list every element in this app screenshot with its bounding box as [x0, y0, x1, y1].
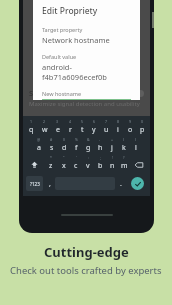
staticText: ;: [100, 155, 101, 160]
staticText: c: [74, 161, 78, 171]
staticText: :: [88, 155, 89, 160]
button[interactable]: ": [57, 155, 70, 174]
staticText: 9: [129, 119, 132, 124]
staticText: u: [104, 125, 109, 135]
staticText: s: [50, 143, 54, 153]
staticText: (: [123, 137, 125, 142]
staticText: 1: [30, 119, 33, 124]
button[interactable]: .: [115, 174, 126, 193]
button[interactable]: :: [82, 155, 94, 174]
staticText: 8: [117, 119, 120, 124]
staticText: k: [122, 143, 126, 153]
staticText: $: [63, 137, 66, 142]
staticText: y: [92, 125, 96, 135]
button[interactable]: 4: [64, 119, 76, 137]
button[interactable]: ): [130, 137, 142, 155]
staticText: l: [135, 143, 137, 153]
button[interactable]: 0: [136, 119, 148, 137]
staticText: i: [117, 125, 119, 135]
staticText: .: [120, 179, 122, 189]
staticText: z: [49, 161, 53, 171]
staticText: &: [87, 137, 90, 142]
staticText: Edit Propriety: [42, 5, 98, 17]
staticText: h: [98, 143, 103, 153]
button[interactable]: Shift: [25, 155, 44, 174]
staticText: t: [81, 125, 84, 135]
button[interactable]: @: [32, 137, 45, 155]
staticText: 0: [141, 119, 144, 124]
staticText: 7: [105, 119, 108, 124]
staticText: %: [75, 137, 78, 142]
button[interactable]: ?: [118, 155, 130, 174]
staticText: !: [112, 155, 113, 160]
staticText: v: [86, 161, 90, 171]
button[interactable]: 8: [112, 119, 124, 137]
staticText: ': [76, 155, 77, 160]
button[interactable]: ,: [44, 174, 55, 193]
button[interactable]: ;: [94, 155, 106, 174]
staticText: p: [140, 125, 145, 135]
button[interactable]: !: [106, 155, 118, 174]
staticText: New hostname: [42, 90, 82, 97]
button[interactable]: Enter: [131, 177, 144, 190]
staticText: +: [111, 137, 114, 142]
button[interactable]: 1: [25, 119, 38, 137]
button[interactable]: ?123: [26, 176, 43, 191]
staticText: ": [63, 155, 65, 160]
button[interactable]: -: [94, 137, 106, 155]
staticText: android-f4b71a6096ecef0b: [42, 62, 131, 82]
staticText: m: [121, 161, 128, 171]
staticText: Cutting-edge: [44, 243, 129, 261]
staticText: w: [42, 125, 48, 135]
button[interactable]: 5: [76, 119, 88, 137]
staticText: f: [75, 143, 78, 153]
staticText: 4: [69, 119, 72, 124]
staticText: b: [98, 161, 103, 171]
button[interactable]: +: [106, 137, 118, 155]
staticText: Maximize signal detection and usability: [29, 100, 140, 108]
staticText: ?123: [30, 181, 40, 187]
staticText: g: [86, 143, 91, 153]
button[interactable]: *: [44, 155, 57, 174]
button[interactable]: &: [82, 137, 94, 155]
button[interactable]: #: [45, 137, 58, 155]
button[interactable]: 7: [100, 119, 112, 137]
staticText: -: [99, 137, 101, 142]
button[interactable]: $: [58, 137, 70, 155]
staticText: j: [111, 143, 113, 153]
staticText: Default value: [42, 53, 77, 60]
staticText: ,: [49, 179, 51, 189]
button[interactable]: (: [118, 137, 130, 155]
staticText: *: [50, 155, 52, 160]
staticText: #: [50, 137, 53, 142]
staticText: @: [37, 137, 41, 142]
staticText: d: [62, 143, 67, 153]
staticText: Network hostname: [42, 35, 110, 45]
staticText: o: [128, 125, 133, 135]
button[interactable]: ': [70, 155, 82, 174]
staticText: ): [135, 137, 137, 142]
staticText: r: [69, 125, 72, 135]
staticText: Check out tools crafted by experts: [10, 264, 162, 277]
button[interactable]: %: [70, 137, 82, 155]
staticText: 2: [43, 119, 46, 124]
button[interactable]: 6: [88, 119, 100, 137]
button[interactable]: 2: [38, 119, 51, 137]
staticText: n: [110, 161, 115, 171]
button[interactable]: 3: [51, 119, 64, 137]
staticText: a: [37, 143, 41, 153]
staticText: ?: [123, 155, 125, 160]
staticText: Signal strands: [29, 88, 80, 98]
staticText: 6: [93, 119, 96, 124]
staticText: Target property: [42, 26, 83, 33]
staticText: q: [29, 125, 34, 135]
button[interactable]: 9: [124, 119, 136, 137]
staticText: x: [62, 161, 66, 171]
button[interactable]: Backspace: [130, 155, 148, 174]
staticText: 3: [56, 119, 59, 124]
staticText: 5: [81, 119, 84, 124]
staticText: e: [56, 125, 60, 135]
